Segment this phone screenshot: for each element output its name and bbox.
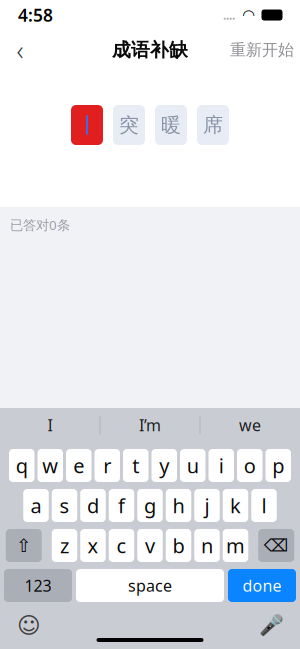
staticText: d [87,492,99,519]
staticText: h [172,492,184,519]
staticText: done [242,575,281,596]
staticText: f [118,492,125,519]
button[interactable]: 暖 [155,105,187,145]
staticText: I’m [139,414,161,436]
button[interactable]: 重新开始 [224,32,300,68]
button[interactable]: x [80,529,106,562]
staticText: n [201,532,213,559]
staticText: u [187,452,199,479]
button[interactable]: space [76,569,224,602]
staticText: m [226,532,245,559]
button[interactable]: done [228,569,296,602]
button[interactable] [71,105,103,145]
button[interactable]: v [137,529,163,562]
staticText: ⌫ [264,536,289,555]
button[interactable]: 席 [197,105,229,145]
button[interactable]: f [109,489,134,522]
button[interactable]: 突 [113,105,145,145]
button[interactable]: d [80,489,106,522]
button[interactable]: Emoji [12,608,46,642]
staticText: y [159,452,169,479]
staticText: 已答对0条 [10,216,70,234]
staticText: I [47,414,52,436]
staticText: ‹ [16,32,23,68]
button[interactable]: g [137,489,163,522]
button[interactable]: k [223,489,248,522]
staticText: 重新开始 [230,40,294,60]
staticText: j [204,492,209,519]
staticText: 成语补缺 [112,38,188,61]
button[interactable]: Back [0,32,40,68]
staticText: v [145,532,155,559]
button[interactable]: we [200,408,299,442]
staticText: i [219,452,224,479]
button[interactable]: n [194,529,220,562]
staticText: e [73,452,84,479]
button[interactable]: w [37,449,63,482]
button[interactable]: ⌫ [258,529,294,562]
staticText: t [132,452,139,479]
staticText: q [16,452,28,479]
button[interactable]: m [223,529,248,562]
staticText: c [116,532,126,559]
staticText: x [87,532,98,559]
staticText: g [144,492,156,519]
staticText: 🎤 [258,614,283,637]
button[interactable]: ⇧ [6,529,42,562]
button[interactable]: u [180,449,205,482]
staticText: 4:58 [18,3,53,26]
button[interactable]: I’m [100,408,199,442]
staticText: 席 [203,113,223,137]
staticText: r [103,452,111,479]
button[interactable]: Dictation [254,608,288,642]
button[interactable]: a [23,489,49,522]
button[interactable]: I [0,408,99,442]
button[interactable]: o [237,449,262,482]
staticText: we [239,414,261,436]
button[interactable]: h [166,489,191,522]
button[interactable]: s [52,489,77,522]
button[interactable]: t [123,449,148,482]
button[interactable]: j [194,489,220,522]
button[interactable]: 123 [4,569,72,602]
staticText: k [230,492,241,519]
button[interactable]: p [265,449,291,482]
staticText: b [172,532,184,559]
button[interactable]: e [66,449,91,482]
button[interactable]: i [208,449,234,482]
button[interactable]: l [251,489,277,522]
button[interactable]: c [109,529,134,562]
staticText: .... [223,7,235,23]
staticText: p [272,452,284,479]
staticText: s [59,492,69,519]
button[interactable]: b [166,529,191,562]
staticText: a [30,492,41,519]
button[interactable]: q [9,449,34,482]
staticText: ◠ [243,7,254,23]
button[interactable]: z [52,529,77,562]
staticText: 突 [119,113,139,137]
staticText: z [60,532,69,559]
staticText: ⇧ [16,535,32,556]
button[interactable]: r [94,449,120,482]
staticText: o [244,452,256,479]
staticText: w [42,452,58,479]
button[interactable]: y [151,449,177,482]
staticText: l [261,492,266,519]
staticText: 123 [24,575,51,596]
staticText: ☺ [17,613,41,638]
staticText: 暖 [161,113,181,137]
staticText: space [128,575,172,596]
